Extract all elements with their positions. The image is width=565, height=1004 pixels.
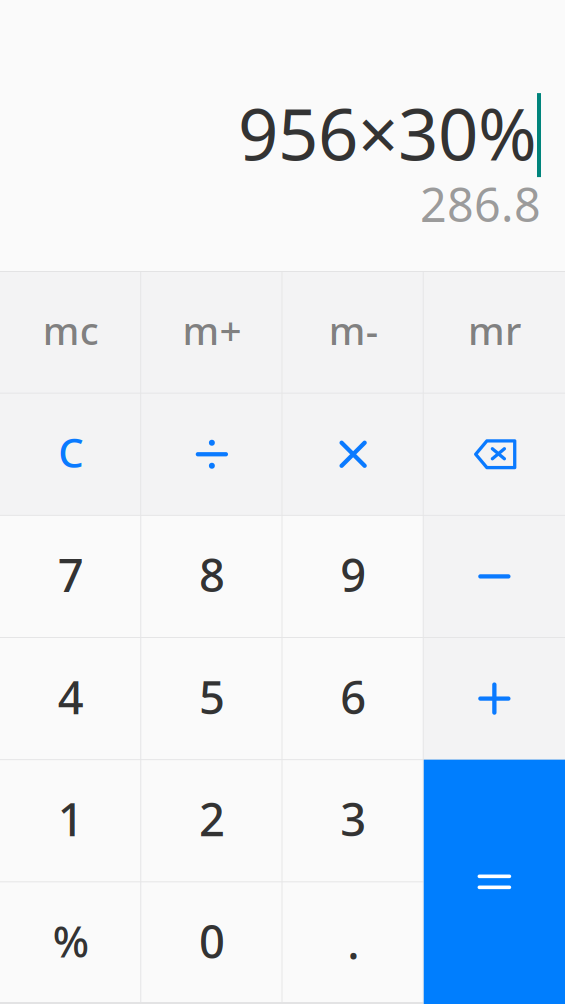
button[interactable]: 4 — [0, 637, 141, 760]
button[interactable]: 1 — [0, 760, 141, 882]
button[interactable]: 2 — [141, 760, 282, 882]
button[interactable]: C — [0, 393, 141, 515]
button[interactable]: 0 — [141, 882, 282, 1004]
staticText: 1 — [58, 789, 84, 849]
staticText: . — [347, 912, 359, 972]
staticText: 4 — [58, 666, 84, 727]
button[interactable]: . — [282, 882, 424, 1004]
button[interactable]: m+ — [141, 271, 282, 393]
button[interactable]: Plus — [424, 637, 565, 760]
button[interactable]: 7 — [0, 515, 141, 637]
button[interactable]: Divide — [141, 393, 282, 515]
button[interactable]: mc — [0, 271, 141, 393]
staticText: 6 — [340, 666, 366, 727]
button[interactable]: 3 — [282, 760, 424, 882]
staticText: 9 — [340, 544, 366, 604]
button[interactable]: 8 — [141, 515, 282, 637]
button[interactable]: Delete — [424, 393, 565, 515]
staticText: 8 — [199, 544, 225, 604]
button[interactable]: 5 — [141, 637, 282, 760]
staticText: 2 — [199, 789, 225, 849]
staticText: m- — [329, 304, 378, 356]
staticText: 3 — [340, 789, 366, 849]
staticText: 956×30% — [238, 86, 537, 180]
staticText: m+ — [182, 304, 241, 356]
staticText: C — [58, 426, 83, 479]
button[interactable]: 6 — [282, 637, 424, 760]
button[interactable]: Minus — [424, 515, 565, 637]
staticText: 286.8 — [420, 173, 541, 235]
button[interactable]: Equals — [424, 760, 565, 1004]
staticText: 0 — [199, 911, 225, 971]
staticText: 7 — [58, 544, 84, 604]
button[interactable]: m- — [282, 271, 424, 393]
button[interactable]: % — [0, 882, 141, 1004]
staticText: mr — [468, 304, 521, 356]
button[interactable]: Multiply — [282, 393, 424, 515]
staticText: mc — [43, 304, 99, 356]
button[interactable]: 9 — [282, 515, 424, 637]
button[interactable]: mr — [424, 271, 565, 393]
staticText: % — [53, 913, 89, 969]
staticText: 5 — [199, 666, 225, 727]
